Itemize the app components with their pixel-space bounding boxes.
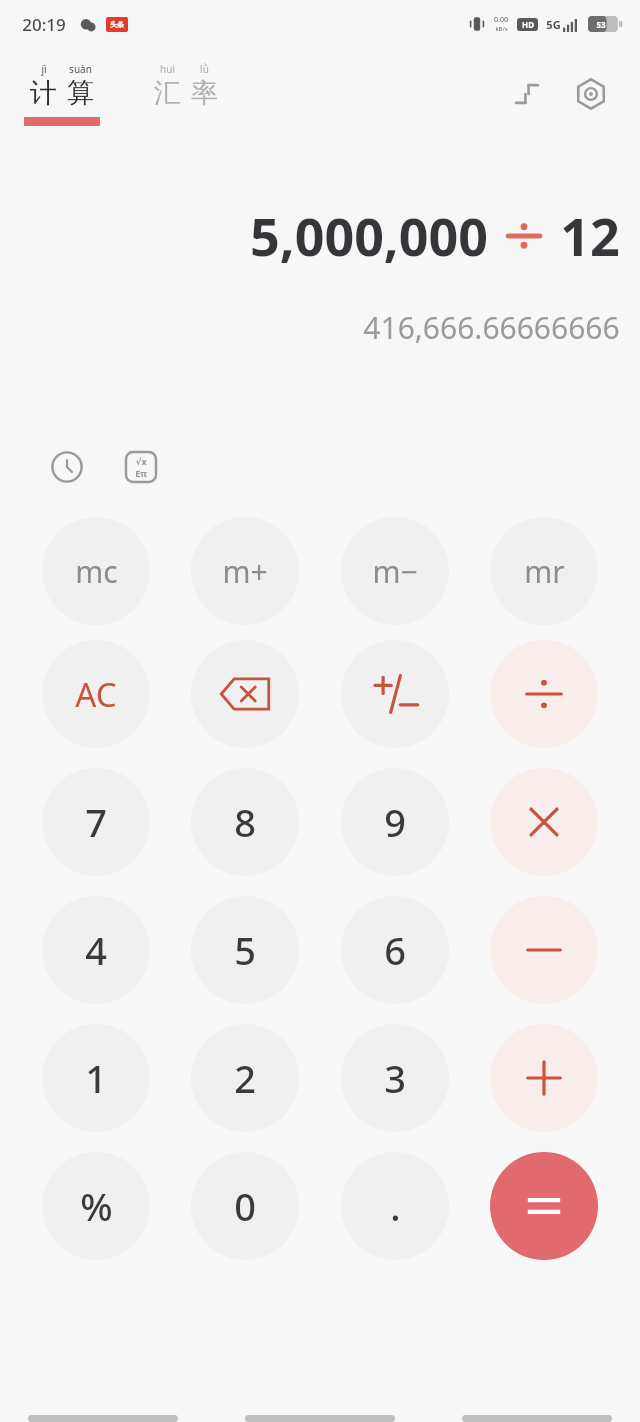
staticText: 5,000,000: [250, 200, 488, 271]
staticText: 12: [560, 200, 620, 271]
button[interactable]: m+: [191, 517, 299, 625]
staticText: mr: [524, 551, 565, 592]
staticText: 3: [384, 1052, 406, 1104]
staticText: 5G: [546, 17, 561, 32]
staticText: .: [390, 1180, 401, 1232]
button[interactable]: Collapse: [504, 71, 550, 117]
button[interactable]: 9: [341, 768, 449, 876]
button[interactable]: Add: [490, 1024, 598, 1132]
staticText: 6: [384, 924, 406, 976]
button[interactable]: .: [341, 1152, 449, 1260]
staticText: suàn: [69, 62, 92, 76]
button[interactable]: %: [42, 1152, 150, 1260]
button[interactable]: Divide: [490, 640, 598, 748]
staticText: jì: [41, 62, 47, 76]
staticText: lǜ: [200, 62, 209, 76]
button[interactable]: Subtract: [490, 896, 598, 1004]
staticText: 9: [384, 796, 406, 848]
button[interactable]: 3: [341, 1024, 449, 1132]
button[interactable]: m−: [341, 517, 449, 625]
staticText: 1: [85, 1052, 107, 1104]
button[interactable]: Scientific mode: [118, 444, 164, 490]
staticText: AC: [75, 672, 117, 717]
staticText: %: [80, 1180, 113, 1232]
staticText: 8: [234, 796, 256, 848]
button[interactable]: 6: [341, 896, 449, 1004]
button[interactable]: Navigation: [28, 1415, 178, 1422]
staticText: huì: [160, 62, 175, 76]
button[interactable]: huì: [150, 62, 222, 126]
staticText: 0.00: [494, 15, 508, 25]
staticText: 计: [30, 76, 57, 110]
button[interactable]: 8: [191, 768, 299, 876]
button[interactable]: Backspace: [191, 640, 299, 748]
button[interactable]: 4: [42, 896, 150, 1004]
staticText: 4: [85, 924, 107, 976]
button[interactable]: Navigation: [245, 1415, 395, 1422]
staticText: 416,666.66666666: [363, 307, 620, 348]
staticText: Eπ: [135, 467, 147, 479]
staticText: √x: [135, 455, 147, 467]
button[interactable]: 1: [42, 1024, 150, 1132]
button[interactable]: AC: [42, 640, 150, 748]
staticText: m−: [372, 551, 418, 592]
button[interactable]: 0: [191, 1152, 299, 1260]
button[interactable]: 7: [42, 768, 150, 876]
button[interactable]: Settings: [568, 71, 614, 117]
staticText: 头条: [110, 20, 124, 29]
button[interactable]: 2: [191, 1024, 299, 1132]
staticText: 率: [191, 76, 218, 110]
staticText: HD: [522, 19, 534, 30]
staticText: 0: [234, 1180, 256, 1232]
button[interactable]: jì: [20, 62, 104, 126]
staticText: 20:19: [22, 13, 66, 36]
button[interactable]: Navigation: [462, 1415, 612, 1422]
button[interactable]: 5: [191, 896, 299, 1004]
staticText: 2: [234, 1052, 256, 1104]
button[interactable]: History: [44, 444, 90, 490]
button[interactable]: Multiply: [490, 768, 598, 876]
button[interactable]: mc: [42, 517, 150, 625]
staticText: kB/s: [495, 25, 508, 33]
staticText: 汇: [154, 76, 181, 110]
staticText: 53: [596, 19, 606, 30]
button[interactable]: mr: [490, 517, 598, 625]
staticText: 7: [85, 796, 107, 848]
button[interactable]: Plus minus: [341, 640, 449, 748]
staticText: 5: [234, 924, 256, 976]
staticText: 算: [67, 76, 94, 110]
button[interactable]: Equals: [490, 1152, 598, 1260]
staticText: mc: [75, 551, 118, 592]
staticText: m+: [222, 551, 268, 592]
